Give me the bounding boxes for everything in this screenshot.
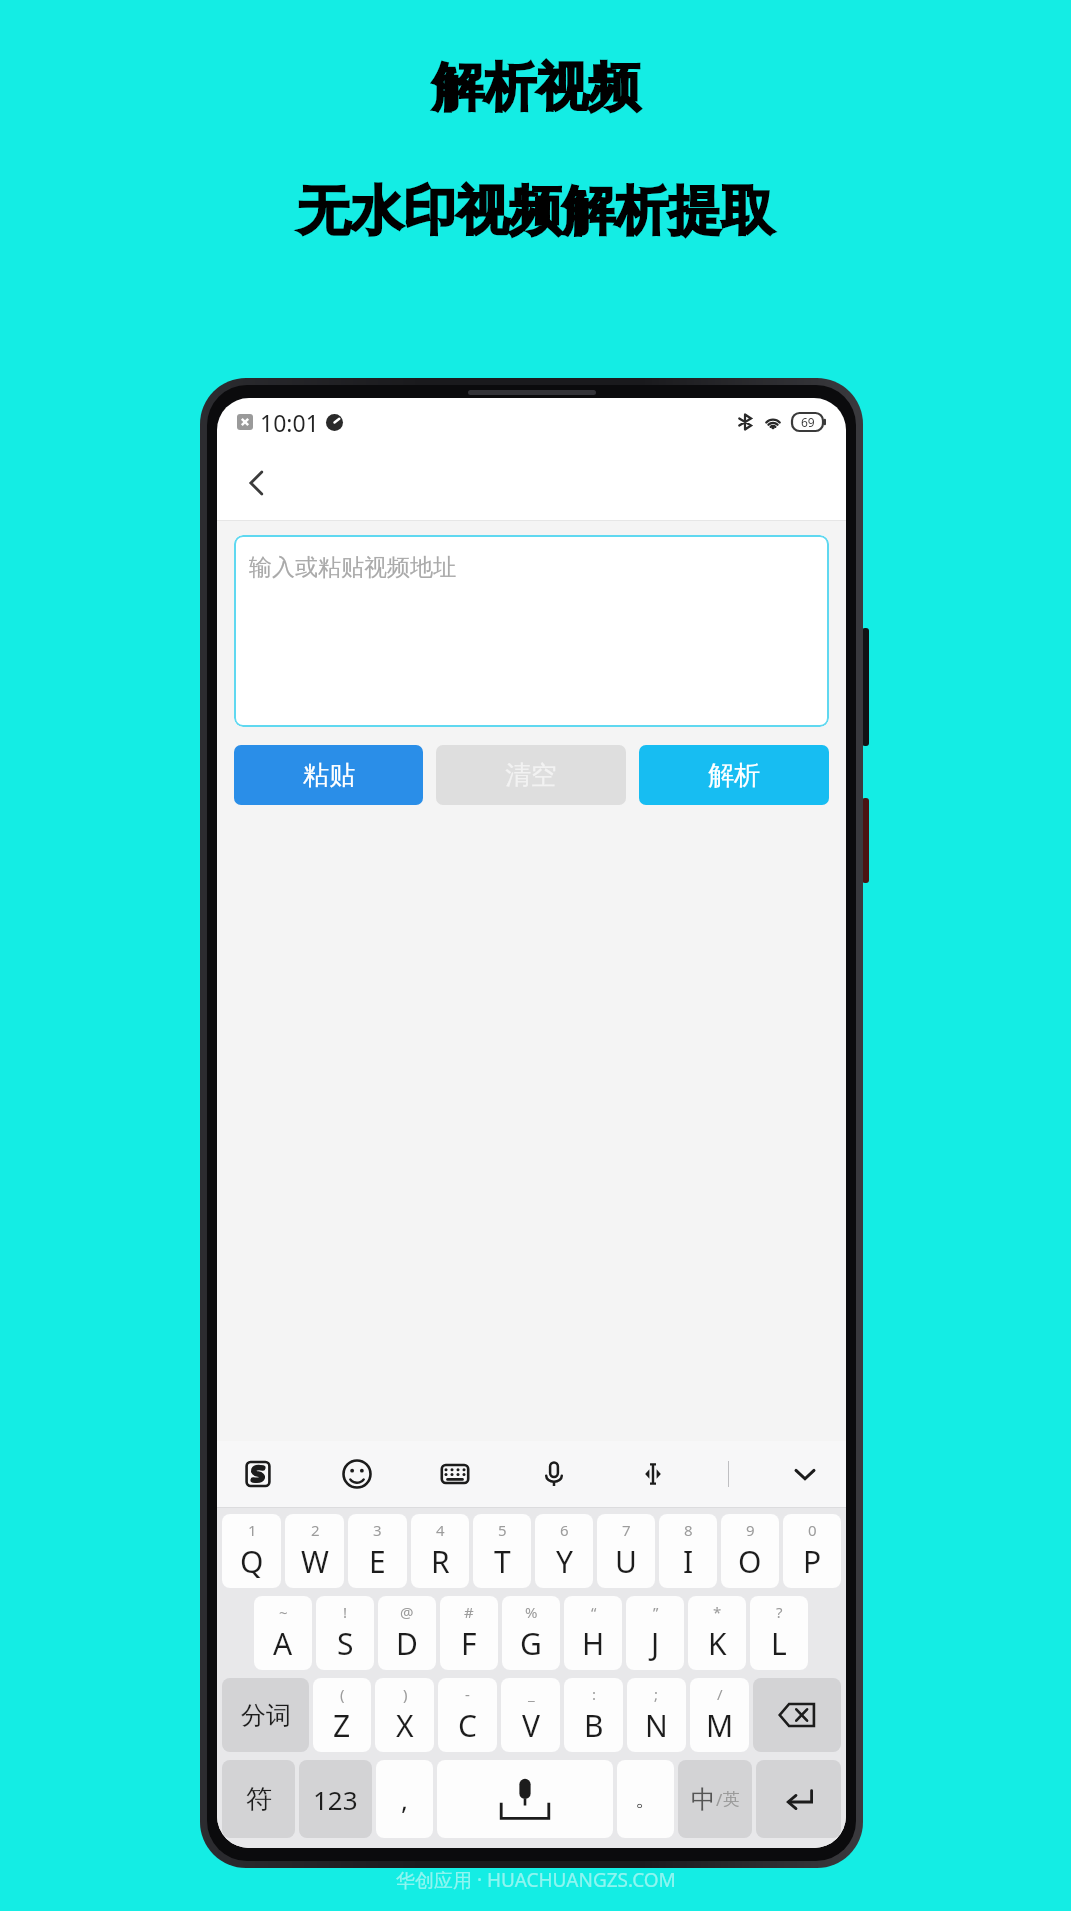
button[interactable]: @: [378, 1596, 436, 1670]
button[interactable]: /: [690, 1678, 749, 1752]
staticText: L: [771, 1623, 787, 1664]
staticText: 清空: [505, 759, 557, 792]
button[interactable]: Back: [231, 457, 283, 509]
staticText: /: [716, 1788, 723, 1811]
staticText: 输入或粘贴视频地址: [249, 553, 456, 582]
button[interactable]: Sogou input: [235, 1451, 281, 1497]
staticText: *: [713, 1602, 722, 1622]
button[interactable]: 8: [659, 1514, 717, 1588]
staticText: 6: [560, 1520, 569, 1540]
button[interactable]: 输入或粘贴视频地址: [234, 535, 829, 727]
button[interactable]: 中: [678, 1760, 752, 1838]
staticText: Q: [240, 1541, 264, 1582]
button[interactable]: :: [564, 1678, 623, 1752]
button[interactable]: Move cursor: [630, 1451, 676, 1497]
button[interactable]: ,: [376, 1760, 433, 1838]
staticText: /: [717, 1684, 723, 1704]
staticText: 英: [723, 1789, 740, 1810]
button[interactable]: _: [501, 1678, 560, 1752]
button[interactable]: 1: [222, 1514, 281, 1588]
button[interactable]: Hide keyboard: [782, 1451, 828, 1497]
staticText: R: [431, 1541, 450, 1582]
button[interactable]: 2: [285, 1514, 344, 1588]
button[interactable]: Emoji: [334, 1451, 380, 1497]
staticText: #: [464, 1602, 474, 1622]
button[interactable]: 粘贴: [234, 745, 423, 805]
staticText: S: [337, 1623, 354, 1664]
staticText: I: [683, 1541, 694, 1582]
button[interactable]: %: [502, 1596, 560, 1670]
staticText: D: [396, 1623, 418, 1664]
staticText: M: [706, 1705, 734, 1746]
staticText: 解析: [708, 759, 760, 792]
staticText: 1: [248, 1520, 257, 1540]
staticText: 4: [436, 1520, 445, 1540]
button[interactable]: 符: [222, 1760, 295, 1838]
staticText: 2: [311, 1520, 320, 1540]
button[interactable]: #: [440, 1596, 498, 1670]
button[interactable]: Voice input: [531, 1451, 577, 1497]
staticText: 符: [246, 1783, 272, 1816]
staticText: ): [403, 1684, 408, 1704]
staticText: 解析视频: [432, 55, 640, 121]
staticText: B: [584, 1705, 604, 1746]
staticText: Y: [556, 1541, 573, 1582]
staticText: 3: [373, 1520, 382, 1540]
button[interactable]: *: [688, 1596, 746, 1670]
button[interactable]: ;: [627, 1678, 686, 1752]
staticText: -: [465, 1684, 470, 1704]
staticText: 无水印视频解析提取: [297, 178, 774, 245]
button[interactable]: ?: [750, 1596, 808, 1670]
staticText: 10:01: [260, 407, 319, 438]
button[interactable]: 清空: [436, 745, 626, 805]
staticText: A: [273, 1623, 293, 1664]
staticText: K: [708, 1623, 727, 1664]
button[interactable]: 0: [783, 1514, 841, 1588]
staticText: ,: [401, 1782, 408, 1817]
button[interactable]: 6: [535, 1514, 593, 1588]
staticText: U: [615, 1541, 637, 1582]
staticText: _: [528, 1684, 535, 1704]
button[interactable]: “: [564, 1596, 622, 1670]
button[interactable]: 3: [348, 1514, 407, 1588]
button[interactable]: ~: [254, 1596, 312, 1670]
button[interactable]: 5: [473, 1514, 531, 1588]
staticText: 粘贴: [303, 759, 355, 792]
staticText: 9: [746, 1520, 755, 1540]
staticText: 5: [498, 1520, 507, 1540]
staticText: :: [592, 1684, 597, 1704]
staticText: F: [461, 1623, 477, 1664]
staticText: J: [651, 1623, 660, 1664]
staticText: V: [522, 1705, 540, 1746]
staticText: 0: [808, 1520, 817, 1540]
staticText: 华创应用 · HUACHUANGZS.COM: [396, 1867, 676, 1893]
staticText: ;: [654, 1684, 659, 1704]
button[interactable]: !: [316, 1596, 374, 1670]
button[interactable]: -: [438, 1678, 497, 1752]
button[interactable]: 分词: [222, 1678, 309, 1752]
button[interactable]: 4: [411, 1514, 469, 1588]
button[interactable]: Backspace: [753, 1678, 841, 1752]
staticText: (: [340, 1684, 345, 1704]
staticText: !: [343, 1602, 348, 1622]
staticText: P: [803, 1541, 822, 1582]
staticText: 。: [635, 1785, 657, 1813]
staticText: ”: [653, 1602, 659, 1622]
staticText: 分词: [241, 1700, 291, 1731]
button[interactable]: (: [313, 1678, 371, 1752]
button[interactable]: ”: [626, 1596, 684, 1670]
button[interactable]: Keyboard layout: [432, 1451, 478, 1497]
button[interactable]: 解析: [639, 745, 829, 805]
staticText: H: [582, 1623, 605, 1664]
button[interactable]: 123: [299, 1760, 372, 1838]
button[interactable]: ): [375, 1678, 434, 1752]
staticText: G: [520, 1623, 542, 1664]
button[interactable]: Enter: [756, 1760, 841, 1838]
button[interactable]: Space: [437, 1760, 613, 1838]
button[interactable]: 。: [617, 1760, 674, 1838]
staticText: N: [645, 1705, 668, 1746]
button[interactable]: 9: [721, 1514, 779, 1588]
staticText: X: [396, 1705, 414, 1746]
staticText: W: [301, 1541, 329, 1582]
button[interactable]: 7: [597, 1514, 655, 1588]
